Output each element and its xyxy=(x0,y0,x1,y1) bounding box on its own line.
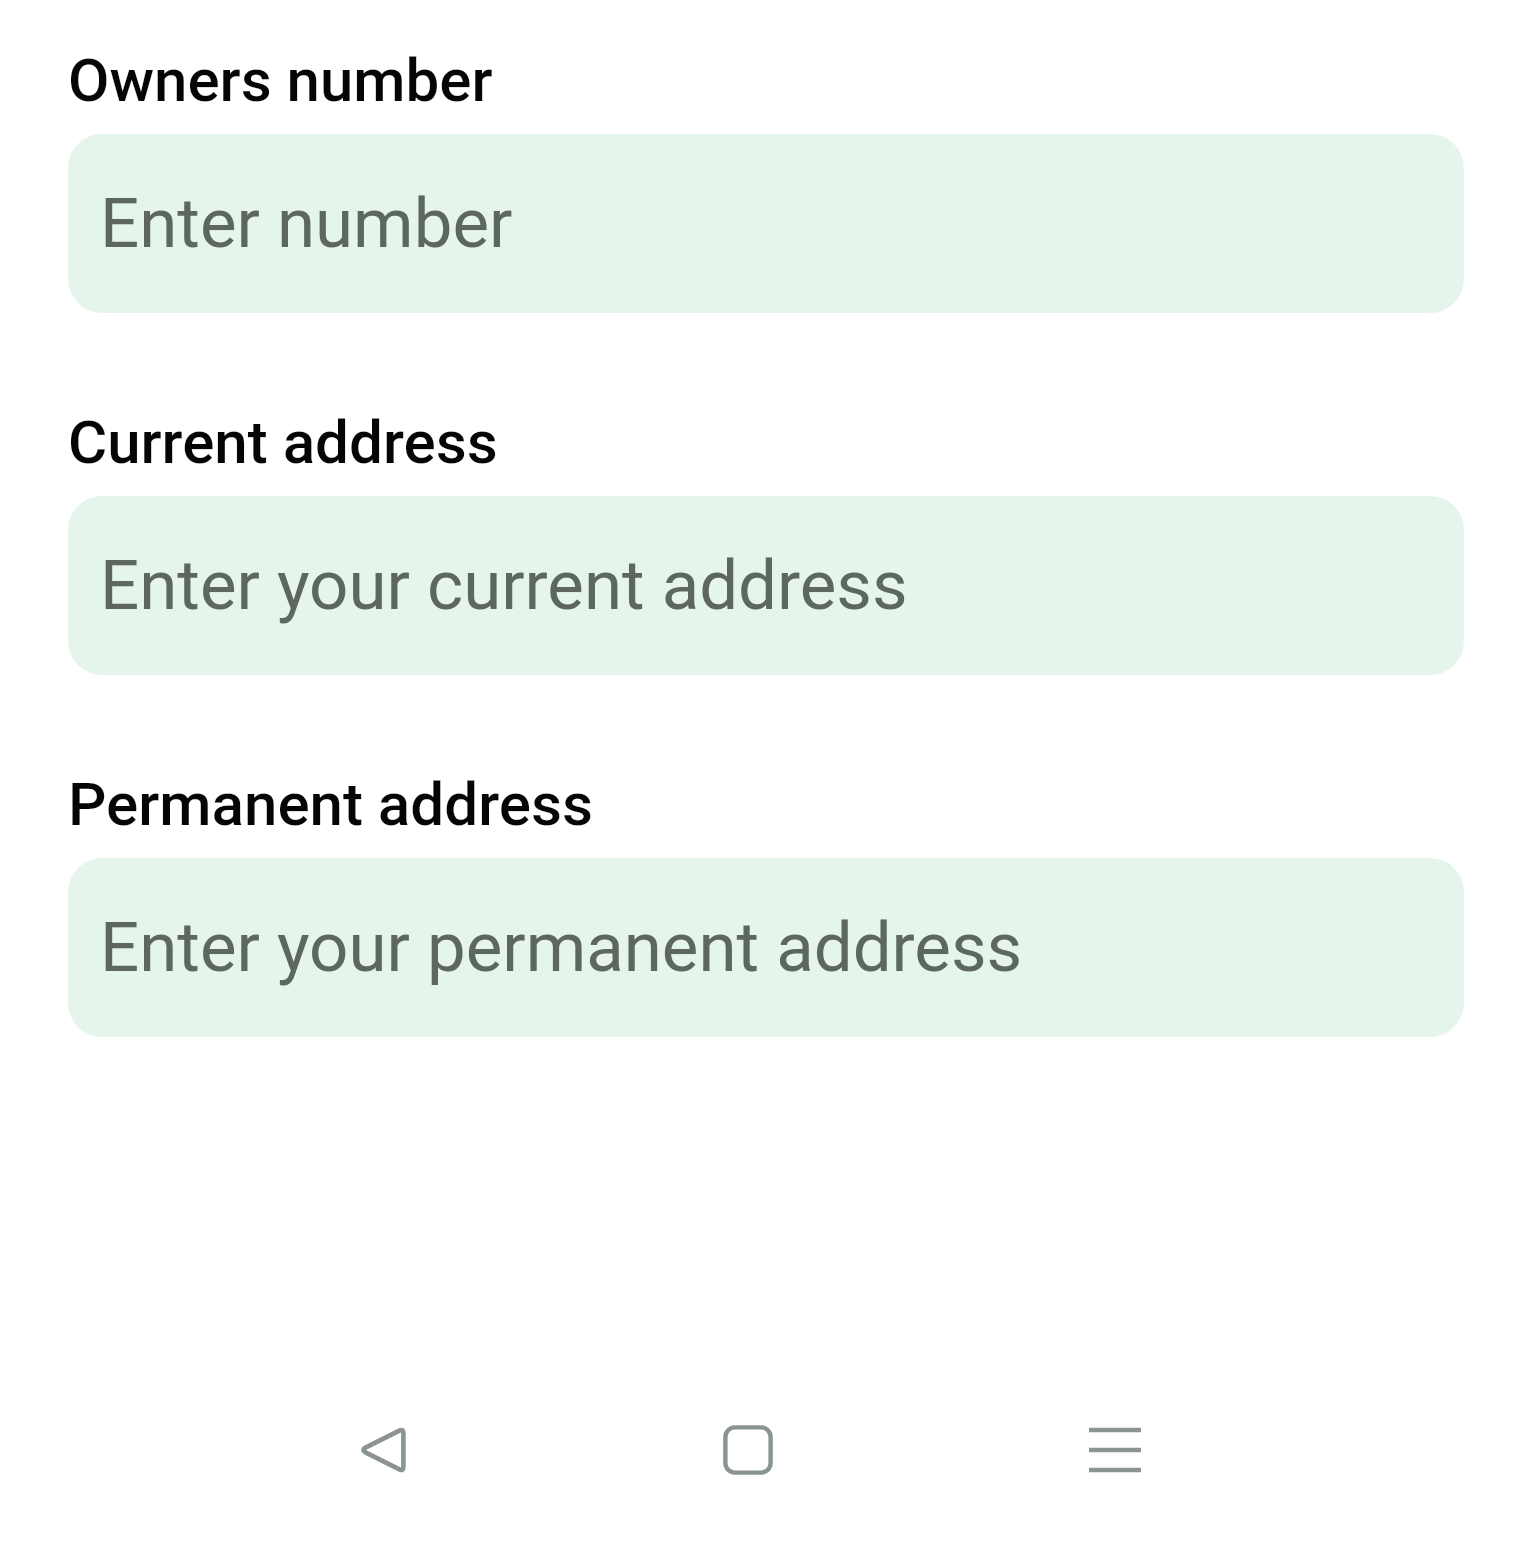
button[interactable]: Enter number xyxy=(68,134,1464,313)
button[interactable]: Enter your current address xyxy=(68,496,1464,675)
button[interactable]: Recent apps xyxy=(1043,1378,1187,1522)
staticText: Enter your current address xyxy=(100,545,908,626)
button[interactable]: Back xyxy=(310,1378,454,1522)
button[interactable]: Home xyxy=(676,1378,820,1522)
staticText: Enter your permanent address xyxy=(100,907,1023,988)
staticText: Owners number xyxy=(68,45,493,115)
button[interactable]: Enter your permanent address xyxy=(68,858,1464,1037)
staticText: Permanent address xyxy=(68,769,593,839)
staticText: Current address xyxy=(68,407,498,477)
staticText: Enter number xyxy=(100,183,513,264)
